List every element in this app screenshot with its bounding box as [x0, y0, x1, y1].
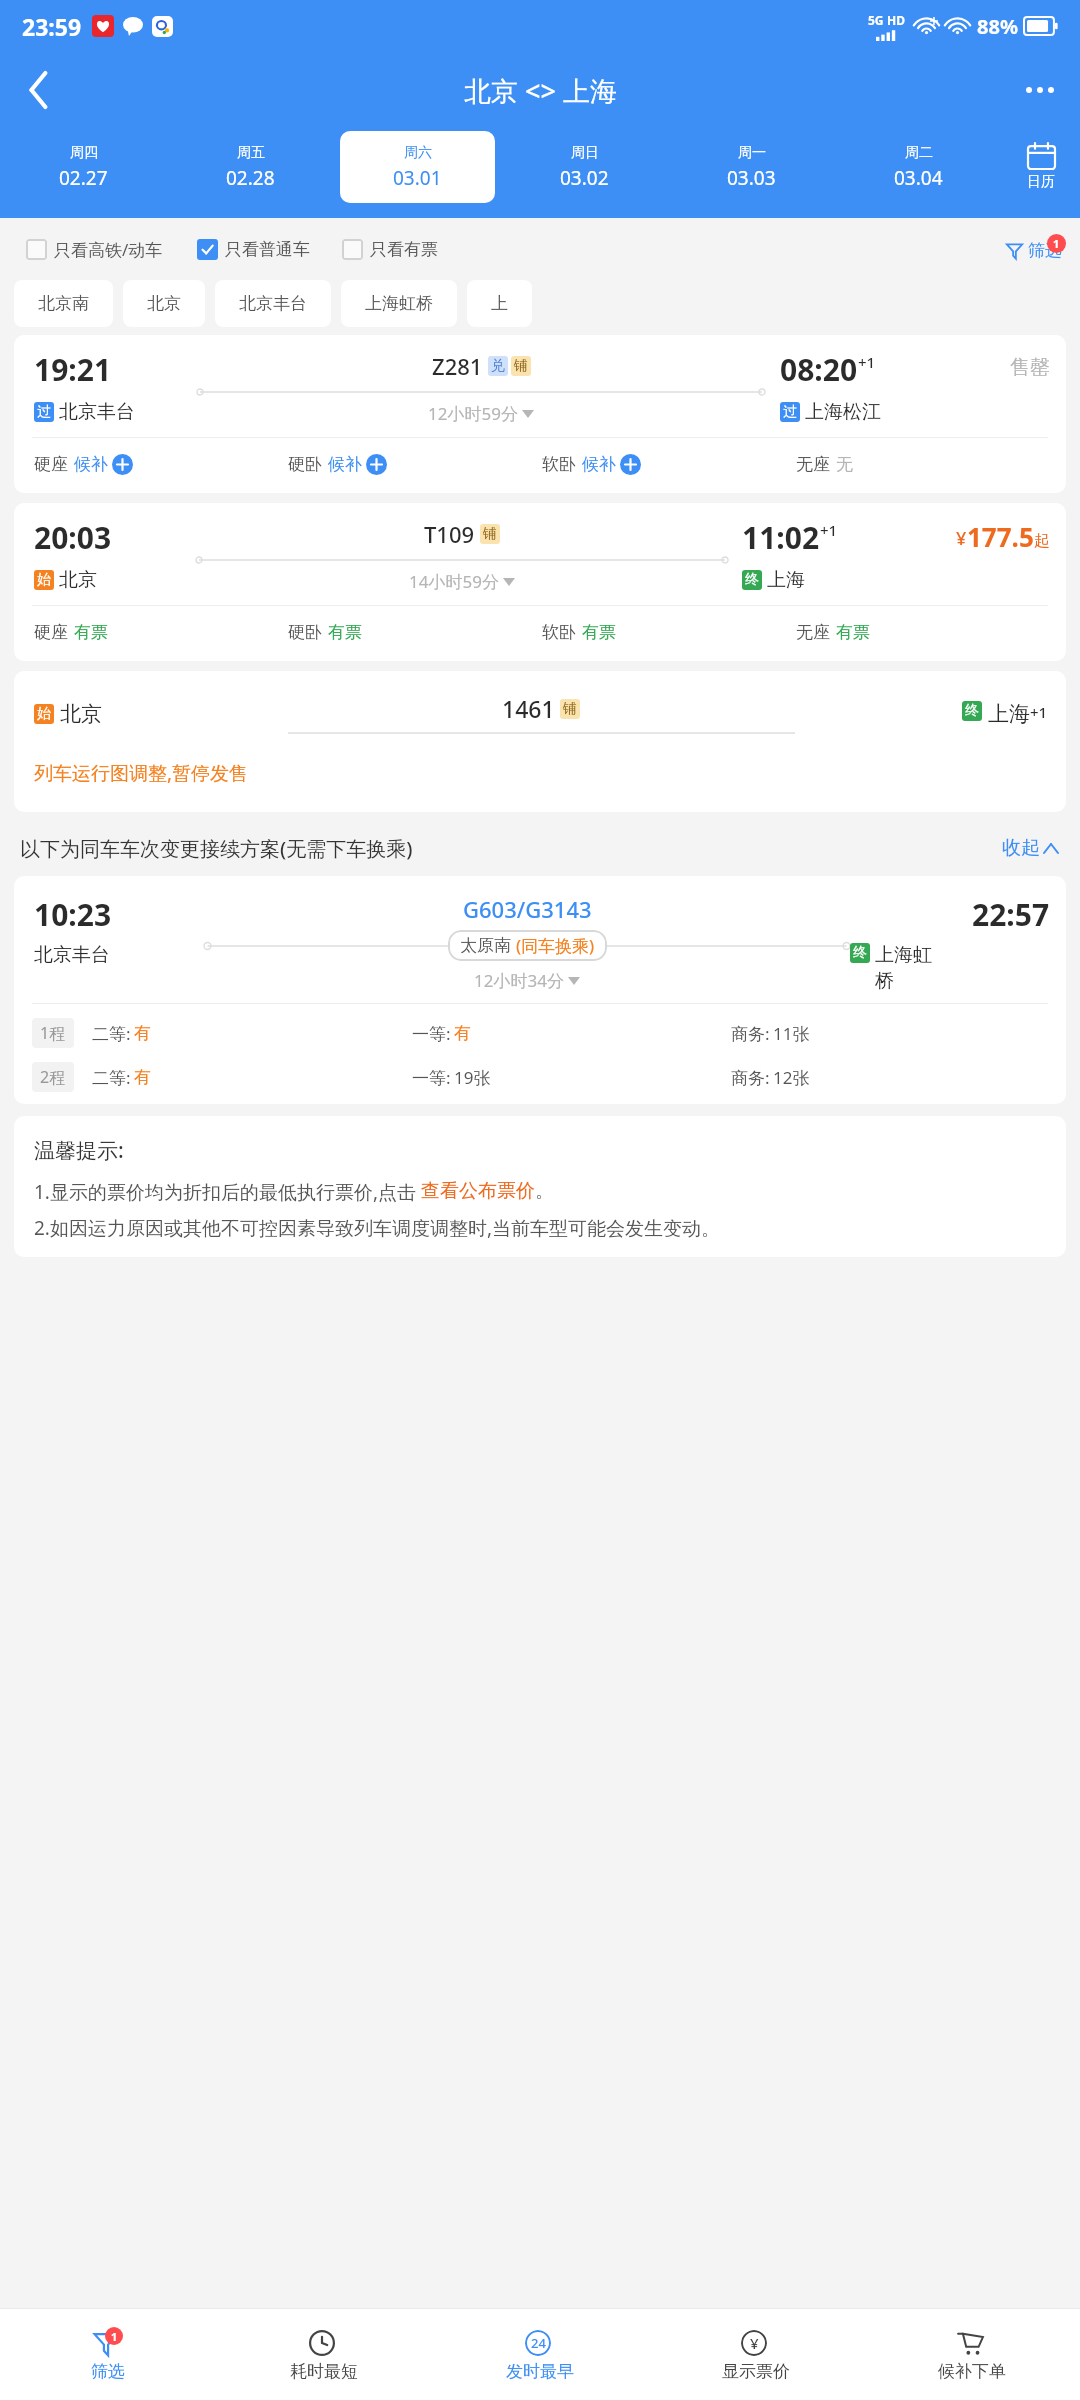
staticText: 1461: [502, 693, 555, 724]
staticText: 显示票价: [722, 2361, 790, 2382]
staticText: 10:23: [34, 894, 112, 935]
staticText: 终: [745, 571, 759, 589]
button[interactable]: 收起: [998, 832, 1062, 864]
staticText: 02.28: [226, 165, 275, 191]
staticText: 始: [37, 571, 51, 589]
staticText: 14小时59分: [409, 570, 499, 593]
button[interactable]: 周一: [674, 131, 829, 203]
staticText: 候补下单: [938, 2361, 1006, 2382]
staticText: 候补: [74, 454, 108, 475]
button[interactable]: 20:03: [14, 503, 1066, 661]
staticText: 5G: [868, 12, 884, 28]
staticText: 19:21: [34, 349, 112, 390]
button[interactable]: 周二: [841, 131, 996, 203]
staticText: 周四: [70, 144, 98, 162]
staticText: 11:02: [742, 517, 820, 558]
staticText: 周一: [738, 144, 766, 162]
staticText: 只看高铁/动车: [54, 238, 163, 261]
button[interactable]: 北京丰台: [215, 280, 331, 327]
staticText: 03.04: [894, 165, 943, 191]
button[interactable]: 耗时最短: [216, 2308, 432, 2400]
staticText: 上海: [767, 568, 805, 592]
staticText: 11张: [773, 1022, 810, 1045]
staticText: 有票: [328, 622, 362, 643]
staticText: 软卧: [542, 454, 576, 475]
staticText: 1.显示的票价均为折扣后的最低执行票价,点击: [34, 1179, 421, 1205]
staticText: 北京丰台: [239, 293, 307, 314]
staticText: 03.02: [560, 165, 609, 191]
staticText: HD: [887, 12, 905, 28]
button[interactable]: 1: [0, 2308, 216, 2400]
button[interactable]: 周日: [507, 131, 662, 203]
button[interactable]: 周六: [340, 131, 495, 203]
button[interactable]: More options: [1012, 62, 1068, 118]
staticText: 。: [535, 1179, 554, 1203]
staticText: 177.5: [967, 519, 1034, 554]
staticText: 有票: [582, 622, 616, 643]
staticText: G603/G3143: [463, 894, 592, 924]
staticText: 无座: [796, 454, 830, 475]
staticText: 只看普通车: [225, 239, 310, 260]
button[interactable]: 只看有票: [342, 233, 438, 266]
button[interactable]: 候补 软卧: [620, 454, 641, 475]
button[interactable]: 只看高铁/动车: [26, 232, 163, 267]
staticText: 铺: [514, 357, 528, 375]
button[interactable]: 周四: [6, 131, 161, 203]
button[interactable]: 始: [14, 671, 1066, 812]
button[interactable]: 候补 硬卧: [366, 454, 387, 475]
button[interactable]: 只看普通车: [197, 233, 310, 266]
staticText: 终: [853, 944, 867, 962]
staticText: 查看公布票价: [421, 1179, 535, 1203]
staticText: 北京 <> 上海: [464, 72, 617, 109]
staticText: 北京: [60, 701, 102, 727]
button[interactable]: 24: [432, 2308, 648, 2400]
staticText: 太原南: [460, 935, 511, 956]
button[interactable]: 日历: [1002, 128, 1080, 206]
staticText: 温馨提示:: [34, 1136, 124, 1165]
staticText: 03.03: [727, 165, 776, 191]
button[interactable]: 北京: [123, 280, 205, 327]
button[interactable]: 上: [467, 280, 532, 327]
staticText: 北京丰台: [34, 943, 110, 967]
staticText: 24: [531, 2334, 546, 2352]
button[interactable]: 10:23: [14, 876, 1066, 1104]
staticText: 20:03: [34, 517, 112, 558]
staticText: ¥: [750, 2333, 759, 2353]
button[interactable]: Back: [10, 61, 68, 119]
staticText: 周五: [237, 144, 265, 162]
staticText: 筛选: [91, 2361, 125, 2382]
staticText: T109: [424, 519, 475, 549]
staticText: 一等:: [412, 1066, 451, 1089]
staticText: 无座: [796, 622, 830, 643]
staticText: 北京: [59, 568, 97, 592]
staticText: 1: [111, 2329, 118, 2344]
staticText: 有票: [836, 622, 870, 643]
staticText: 售罄: [1010, 355, 1050, 380]
button[interactable]: 19:21: [14, 335, 1066, 493]
staticText: 上海: [988, 701, 1030, 727]
button[interactable]: ¥: [648, 2308, 864, 2400]
staticText: +1: [858, 352, 876, 372]
staticText: 上: [491, 293, 508, 314]
staticText: 候补: [582, 454, 616, 475]
staticText: 上海松江: [805, 400, 881, 424]
staticText: 日历: [1027, 173, 1055, 191]
staticText: 筛选: [1028, 240, 1062, 261]
button[interactable]: 周五: [173, 131, 328, 203]
button[interactable]: 筛选: [1002, 234, 1066, 265]
button[interactable]: 候补 硬座: [112, 454, 133, 475]
staticText: 无: [836, 454, 853, 475]
staticText: 88%: [977, 13, 1018, 40]
button[interactable]: 上海虹桥: [341, 280, 457, 327]
staticText: 硬座: [34, 454, 68, 475]
staticText: 上海虹桥: [365, 293, 433, 314]
staticText: 二等:: [92, 1022, 131, 1045]
staticText: 硬卧: [288, 454, 322, 475]
staticText: 终: [965, 702, 979, 720]
button[interactable]: 候补下单: [864, 2308, 1080, 2400]
staticText: 02.27: [59, 165, 108, 191]
button[interactable]: 北京南: [14, 280, 113, 327]
staticText: 12小时34分: [474, 969, 564, 992]
staticText: 始: [37, 705, 51, 723]
staticText: 兑: [491, 357, 505, 375]
